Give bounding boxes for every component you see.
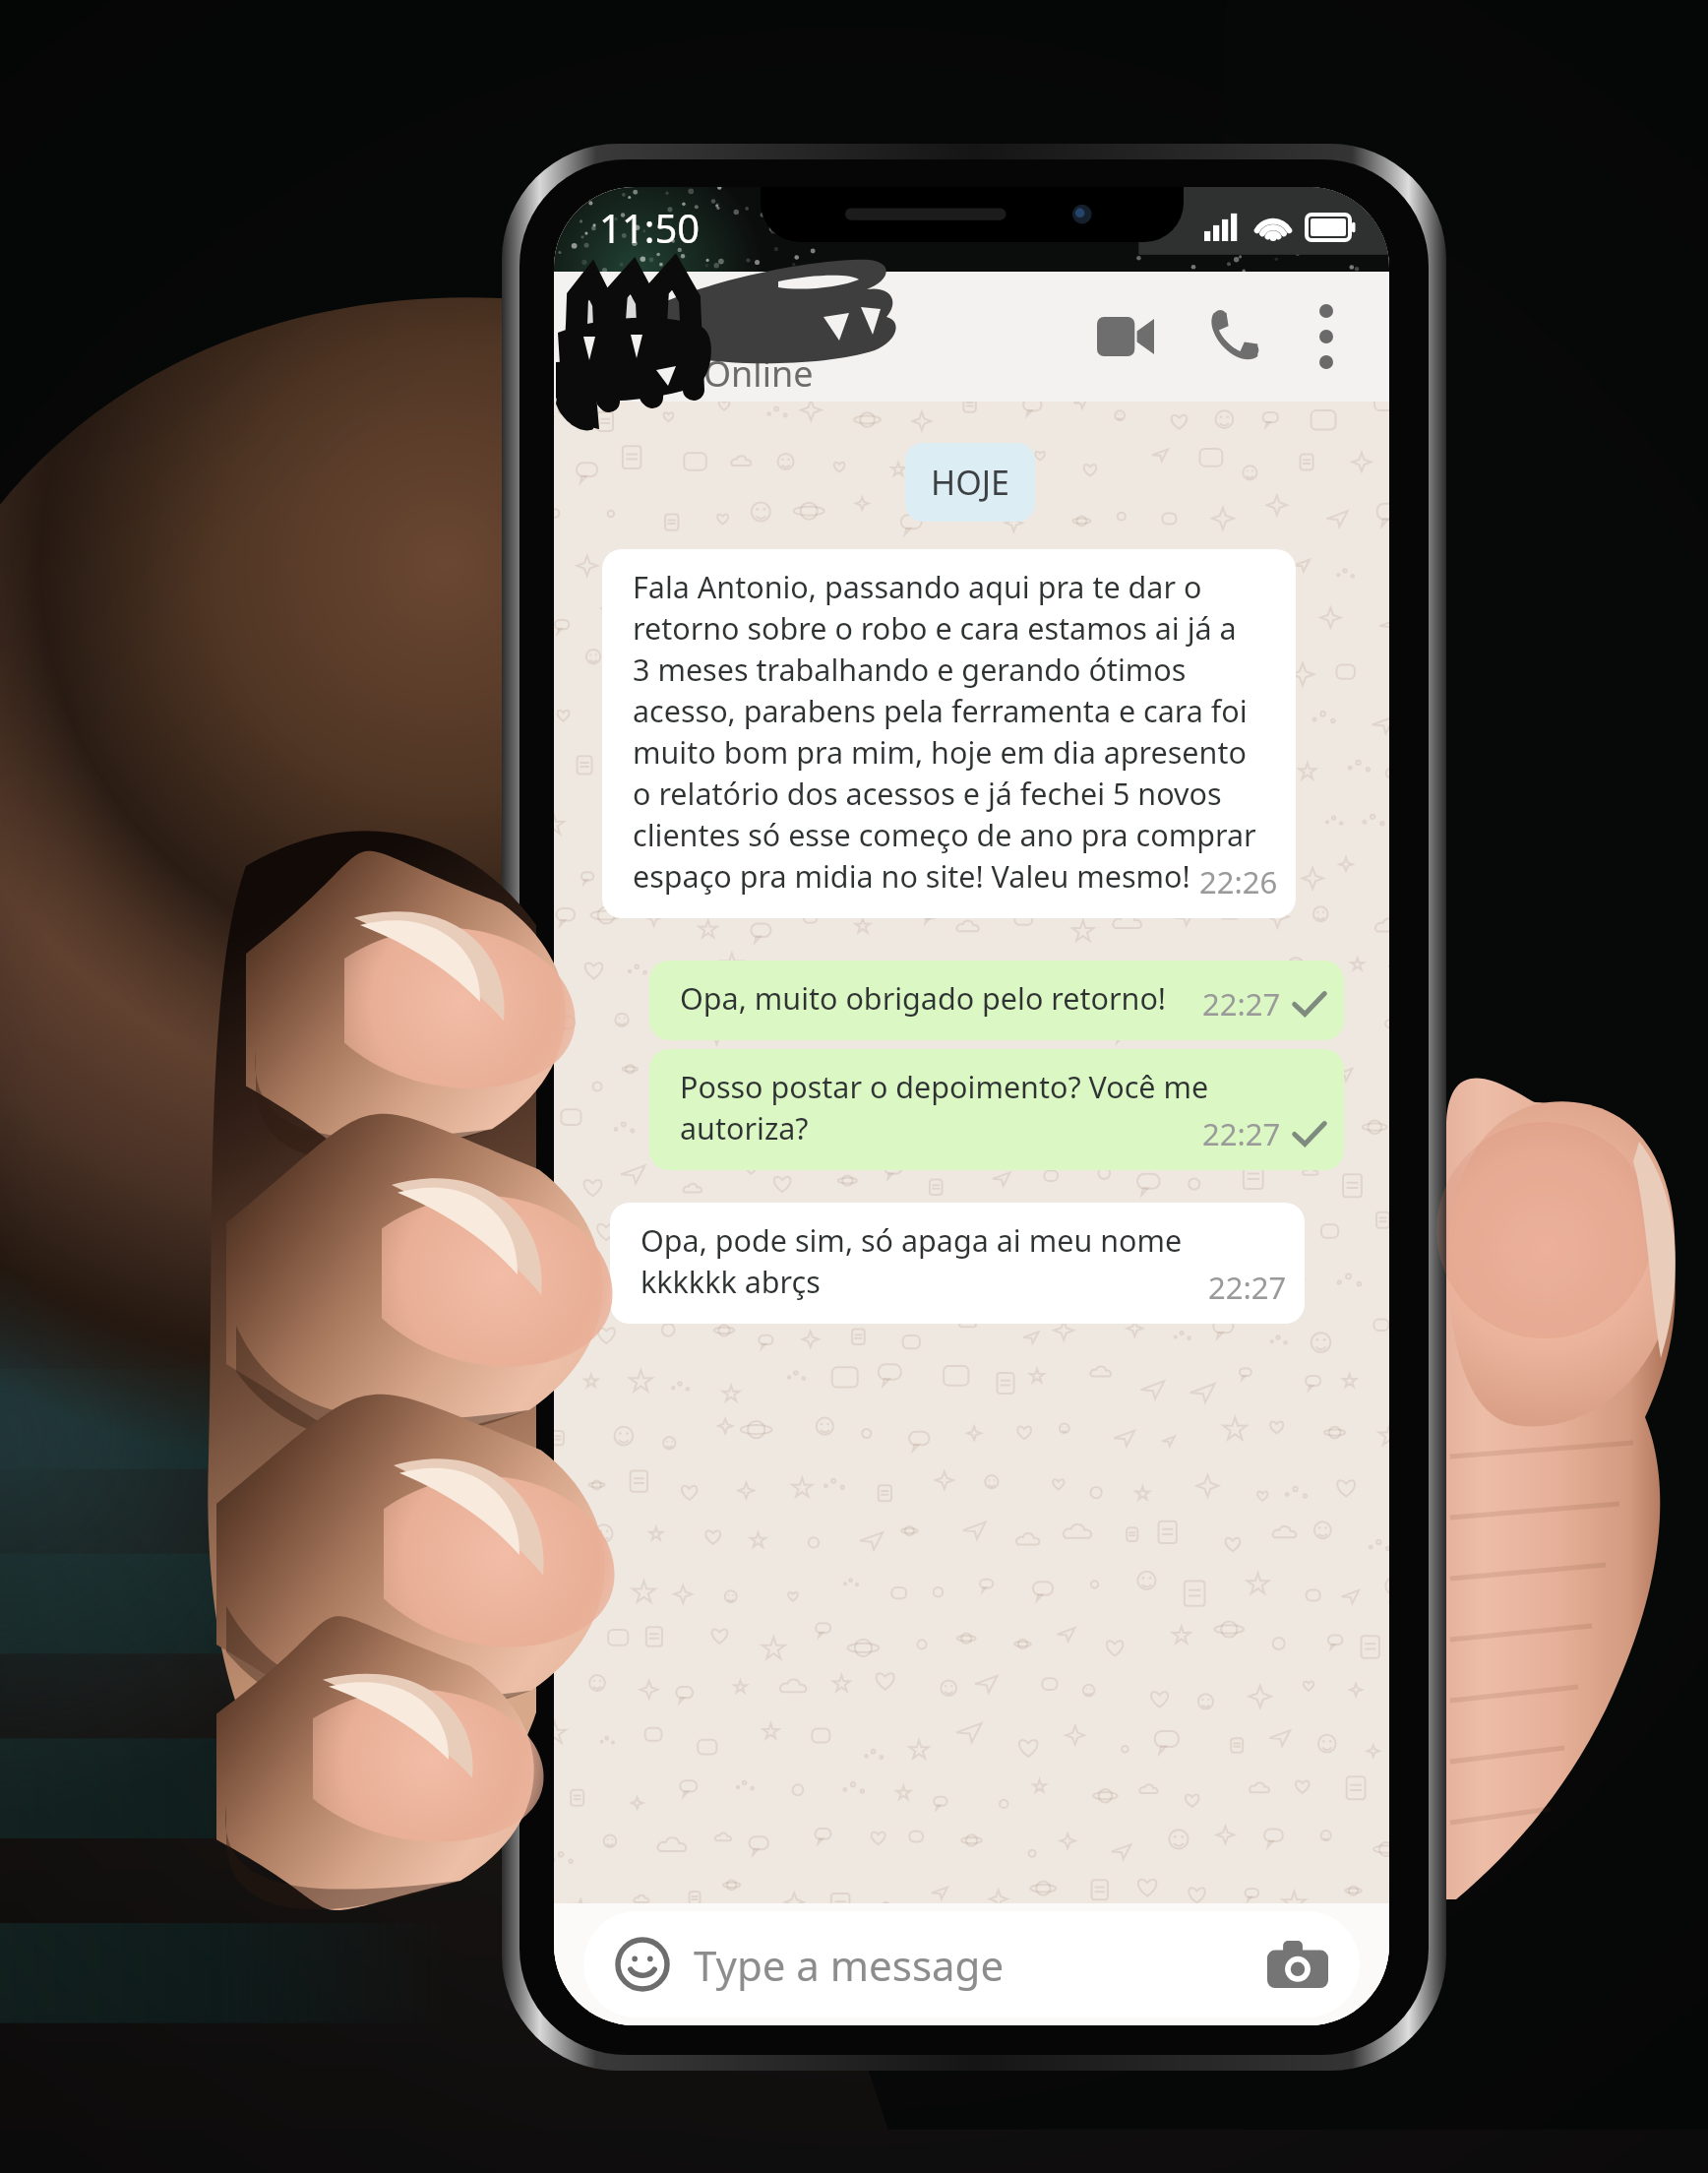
staticText: 22:27 (1208, 1267, 1287, 1308)
staticText: kkkkkk abrçs (640, 1261, 821, 1302)
staticText: 3 meses trabalhando e gerando ótimos (633, 649, 1187, 690)
staticText: 22:26 (1199, 861, 1278, 902)
button[interactable]: Emoji (583, 1911, 1360, 2018)
staticText: acesso, parabens pela ferramenta e cara … (633, 690, 1248, 731)
staticText: Opa, pode sim, só apaga ai meu nome (640, 1219, 1183, 1261)
button[interactable]: Call (1187, 289, 1281, 384)
staticText: 22:27 (1202, 983, 1281, 1024)
staticText: Online (703, 349, 814, 398)
staticText: Opa, muito obrigado pelo retorno! (680, 977, 1167, 1019)
button[interactable]: Fala Antonio, passando aqui pra te dar o (602, 549, 1296, 918)
staticText: o relatório dos acessos e já fechei 5 no… (633, 773, 1222, 814)
button[interactable]: Opa, muito obrigado pelo retorno! (649, 961, 1344, 1040)
staticText: Type a message (694, 1937, 1005, 1993)
staticText: Fala Antonio, passando aqui pra te dar o (633, 566, 1202, 607)
staticText: 22:27 (1202, 1113, 1281, 1154)
button[interactable]: Emoji (613, 1935, 672, 1994)
staticText: retorno sobre o robo e cara estamos ai j… (633, 607, 1237, 649)
staticText: clientes só esse começo de ano pra compr… (633, 814, 1256, 855)
button[interactable]: More options (1285, 295, 1368, 378)
button[interactable]: Opa, pode sim, só apaga ai meu nome (610, 1203, 1305, 1324)
staticText: muito bom pra mim, hoje em dia apresento (633, 731, 1247, 773)
button[interactable]: Online (554, 272, 1389, 402)
staticText: HOJE (931, 460, 1009, 505)
staticText: autoriza? (680, 1107, 809, 1149)
button[interactable]: Video call (1078, 289, 1173, 384)
staticText: espaço pra midia no site! Valeu mesmo! (633, 855, 1190, 897)
button[interactable]: Camera (1263, 1930, 1332, 1999)
button[interactable]: Posso postar o depoimento? Você me (649, 1049, 1344, 1170)
button[interactable]: HOJE (905, 443, 1035, 522)
staticText: Posso postar o depoimento? Você me (680, 1066, 1209, 1107)
staticText: 11:50 (599, 201, 701, 254)
